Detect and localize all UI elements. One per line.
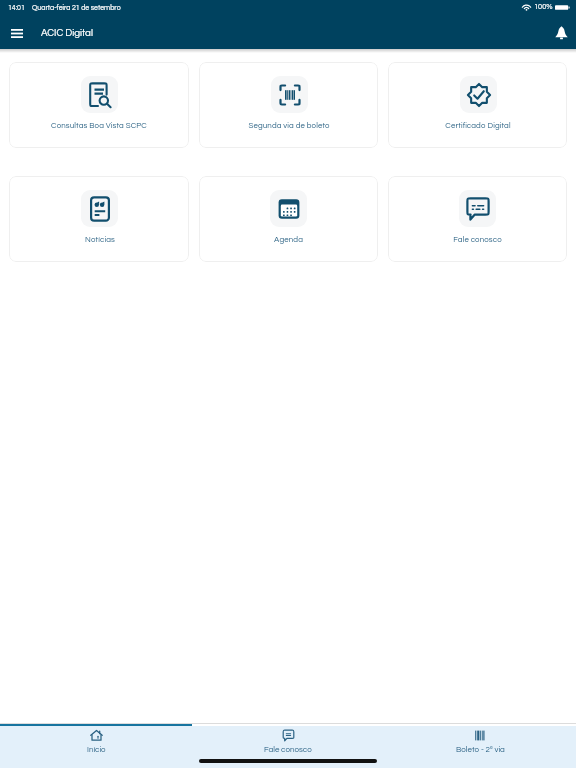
- button[interactable]: Boleto - 2ª via: [384, 726, 576, 753]
- staticText: 14:01: [8, 4, 25, 11]
- staticText: Consultas Boa Vista SCPC: [51, 122, 147, 130]
- staticText: Certificado Digital: [445, 122, 511, 130]
- staticText: Boleto - 2ª via: [456, 745, 505, 753]
- button[interactable]: Certificado Digital: [388, 62, 567, 148]
- staticText: Agenda: [274, 236, 303, 244]
- button[interactable]: Notifications: [546, 18, 576, 48]
- button[interactable]: Segunda via de boleto: [199, 62, 378, 148]
- button[interactable]: Notícias: [9, 176, 189, 262]
- button[interactable]: Agenda: [199, 176, 378, 262]
- button[interactable]: Início: [0, 726, 192, 753]
- staticText: Fale conosco: [453, 236, 502, 244]
- button[interactable]: Fale conosco: [388, 176, 567, 262]
- staticText: Quarta-feira 21 de setembro: [32, 4, 121, 11]
- button[interactable]: Consultas Boa Vista SCPC: [9, 62, 189, 148]
- staticText: Segunda via de boleto: [248, 122, 330, 130]
- button[interactable]: Open navigation menu: [0, 17, 33, 49]
- button[interactable]: Fale conosco: [192, 726, 384, 753]
- staticText: Fale conosco: [264, 745, 312, 753]
- staticText: Notícias: [85, 236, 115, 244]
- staticText: Início: [87, 745, 106, 753]
- staticText: 100%: [534, 3, 553, 11]
- staticText: ACIC Digital: [41, 28, 93, 38]
